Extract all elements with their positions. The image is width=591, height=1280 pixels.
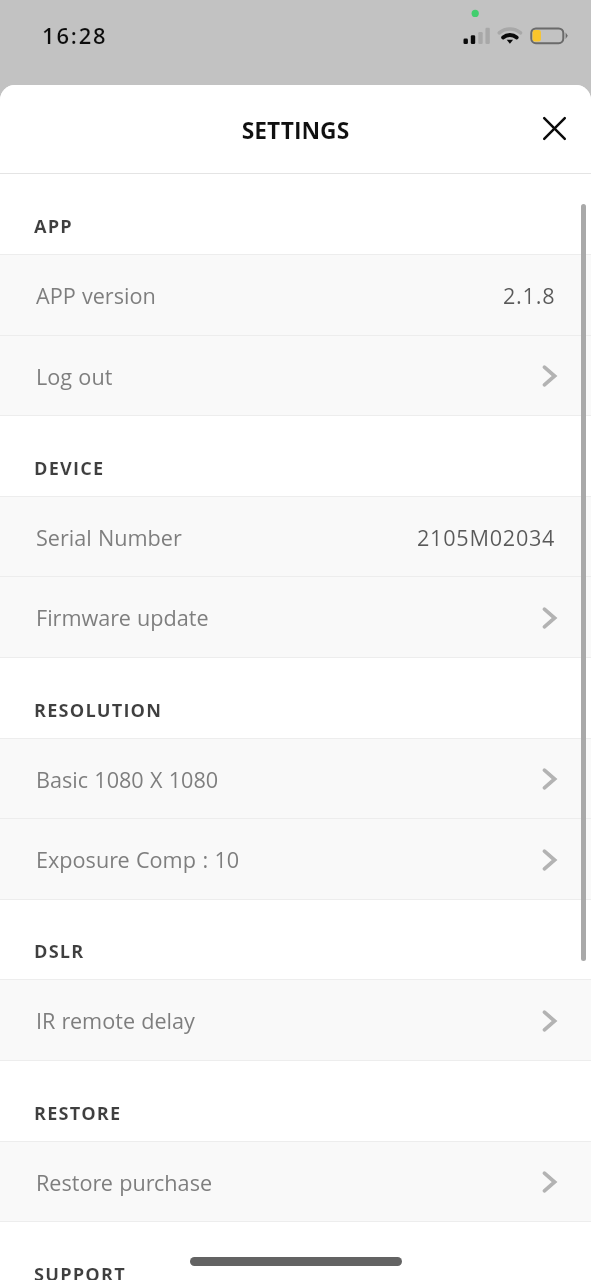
staticText: SUPPORT: [34, 1261, 126, 1280]
button[interactable]: Basic 1080 X 1080: [0, 739, 591, 819]
staticText: SETTINGS: [0, 114, 591, 153]
staticText: 2.1.8: [503, 281, 556, 318]
staticText: APP: [34, 213, 73, 244]
staticText: Exposure Comp : 10: [36, 845, 240, 882]
staticText: IR remote delay: [36, 1006, 195, 1043]
staticText: DEVICE: [34, 455, 105, 486]
staticText: Firmware update: [36, 603, 209, 640]
staticText: RESOLUTION: [34, 697, 163, 728]
button[interactable]: Firmware update: [0, 577, 591, 658]
staticText: 16:28: [42, 20, 108, 58]
button[interactable]: Log out: [0, 336, 591, 416]
button[interactable]: Serial Number: [0, 497, 591, 577]
staticText: APP version: [36, 281, 156, 318]
button[interactable]: Close: [530, 104, 578, 152]
staticText: 2105M02034: [417, 523, 556, 560]
staticText: Restore purchase: [36, 1168, 213, 1205]
staticText: Basic 1080 X 1080: [36, 765, 219, 802]
button[interactable]: Exposure Comp : 10: [0, 819, 591, 900]
button[interactable]: APP version: [0, 255, 591, 336]
button[interactable]: Restore purchase: [0, 1142, 591, 1222]
staticText: RESTORE: [34, 1100, 122, 1131]
button[interactable]: IR remote delay: [0, 980, 591, 1061]
staticText: Log out: [36, 362, 113, 399]
staticText: DSLR: [34, 938, 85, 969]
staticText: Serial Number: [36, 523, 182, 560]
